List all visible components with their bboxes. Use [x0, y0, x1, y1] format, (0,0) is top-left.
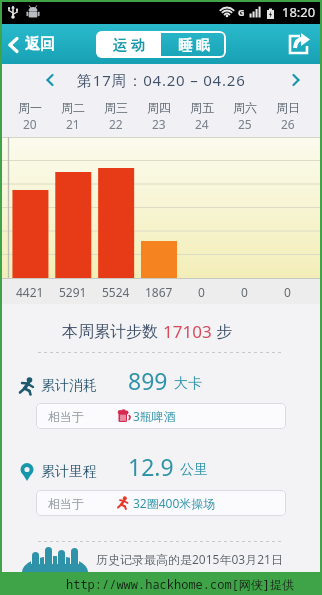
staticText: 大卡 — [174, 375, 202, 393]
staticText: 相当于 — [48, 496, 84, 511]
button[interactable] — [288, 72, 304, 88]
button[interactable]: 运 动 — [96, 31, 161, 58]
staticText: 周二 — [61, 100, 85, 115]
staticText: 12.9 — [128, 451, 174, 482]
staticText: 21 — [66, 116, 80, 132]
staticText: 步 — [212, 320, 233, 342]
button[interactable]: 相当于 — [48, 403, 286, 429]
button[interactable]: 睡 眠 — [161, 31, 226, 58]
staticText: 3瓶啤酒 — [133, 408, 176, 424]
staticText: 睡 眠 — [178, 35, 210, 54]
staticText: 5291 — [59, 284, 87, 300]
staticText: 24 — [195, 116, 209, 132]
staticText: 周日 — [276, 100, 300, 115]
staticText: 0 — [284, 284, 291, 300]
button[interactable]: 返回 — [6, 35, 55, 54]
staticText: 899 — [128, 365, 168, 396]
staticText: 运 动 — [113, 35, 145, 54]
staticText: 5524 — [102, 284, 130, 300]
staticText: 公里 — [180, 461, 208, 479]
staticText: 历史记录最高的是2015年03月21日 — [96, 551, 283, 567]
staticText: 累计里程 — [41, 463, 97, 481]
staticText: 周六 — [233, 100, 257, 115]
staticText: G — [238, 6, 245, 18]
staticText: 周三 — [104, 100, 128, 115]
staticText: 第17周：04.20 – 04.26 — [77, 70, 246, 90]
staticText: 累计消耗 — [41, 377, 97, 395]
staticText: 1867 — [145, 284, 173, 300]
button[interactable] — [42, 72, 58, 88]
button[interactable]: 累计消耗 — [17, 365, 322, 396]
staticText: 周一 — [18, 100, 42, 115]
staticText: 17103 — [163, 320, 212, 343]
staticText: 相当于 — [48, 409, 84, 424]
staticText: 32圈400米操场 — [133, 495, 216, 511]
staticText: 周五 — [190, 100, 214, 115]
button[interactable] — [286, 31, 312, 57]
staticText: 返回 — [25, 35, 55, 54]
staticText: 22 — [109, 116, 123, 132]
button[interactable]: 相当于 — [48, 490, 286, 516]
staticText: 4421 — [16, 284, 44, 300]
staticText: http://www.hackhome.com[网侠]提供 — [66, 576, 295, 592]
staticText: 0 — [241, 284, 248, 300]
staticText: 18:20 — [282, 3, 316, 21]
button[interactable]: 累计里程 — [17, 451, 322, 482]
staticText: 周四 — [147, 100, 171, 115]
staticText: 20 — [23, 116, 37, 132]
staticText: 本周累计步数 — [62, 320, 163, 342]
staticText: 0 — [198, 284, 205, 300]
staticText: 26 — [281, 116, 295, 132]
staticText: 25 — [238, 116, 252, 132]
staticText: 23 — [152, 116, 166, 132]
